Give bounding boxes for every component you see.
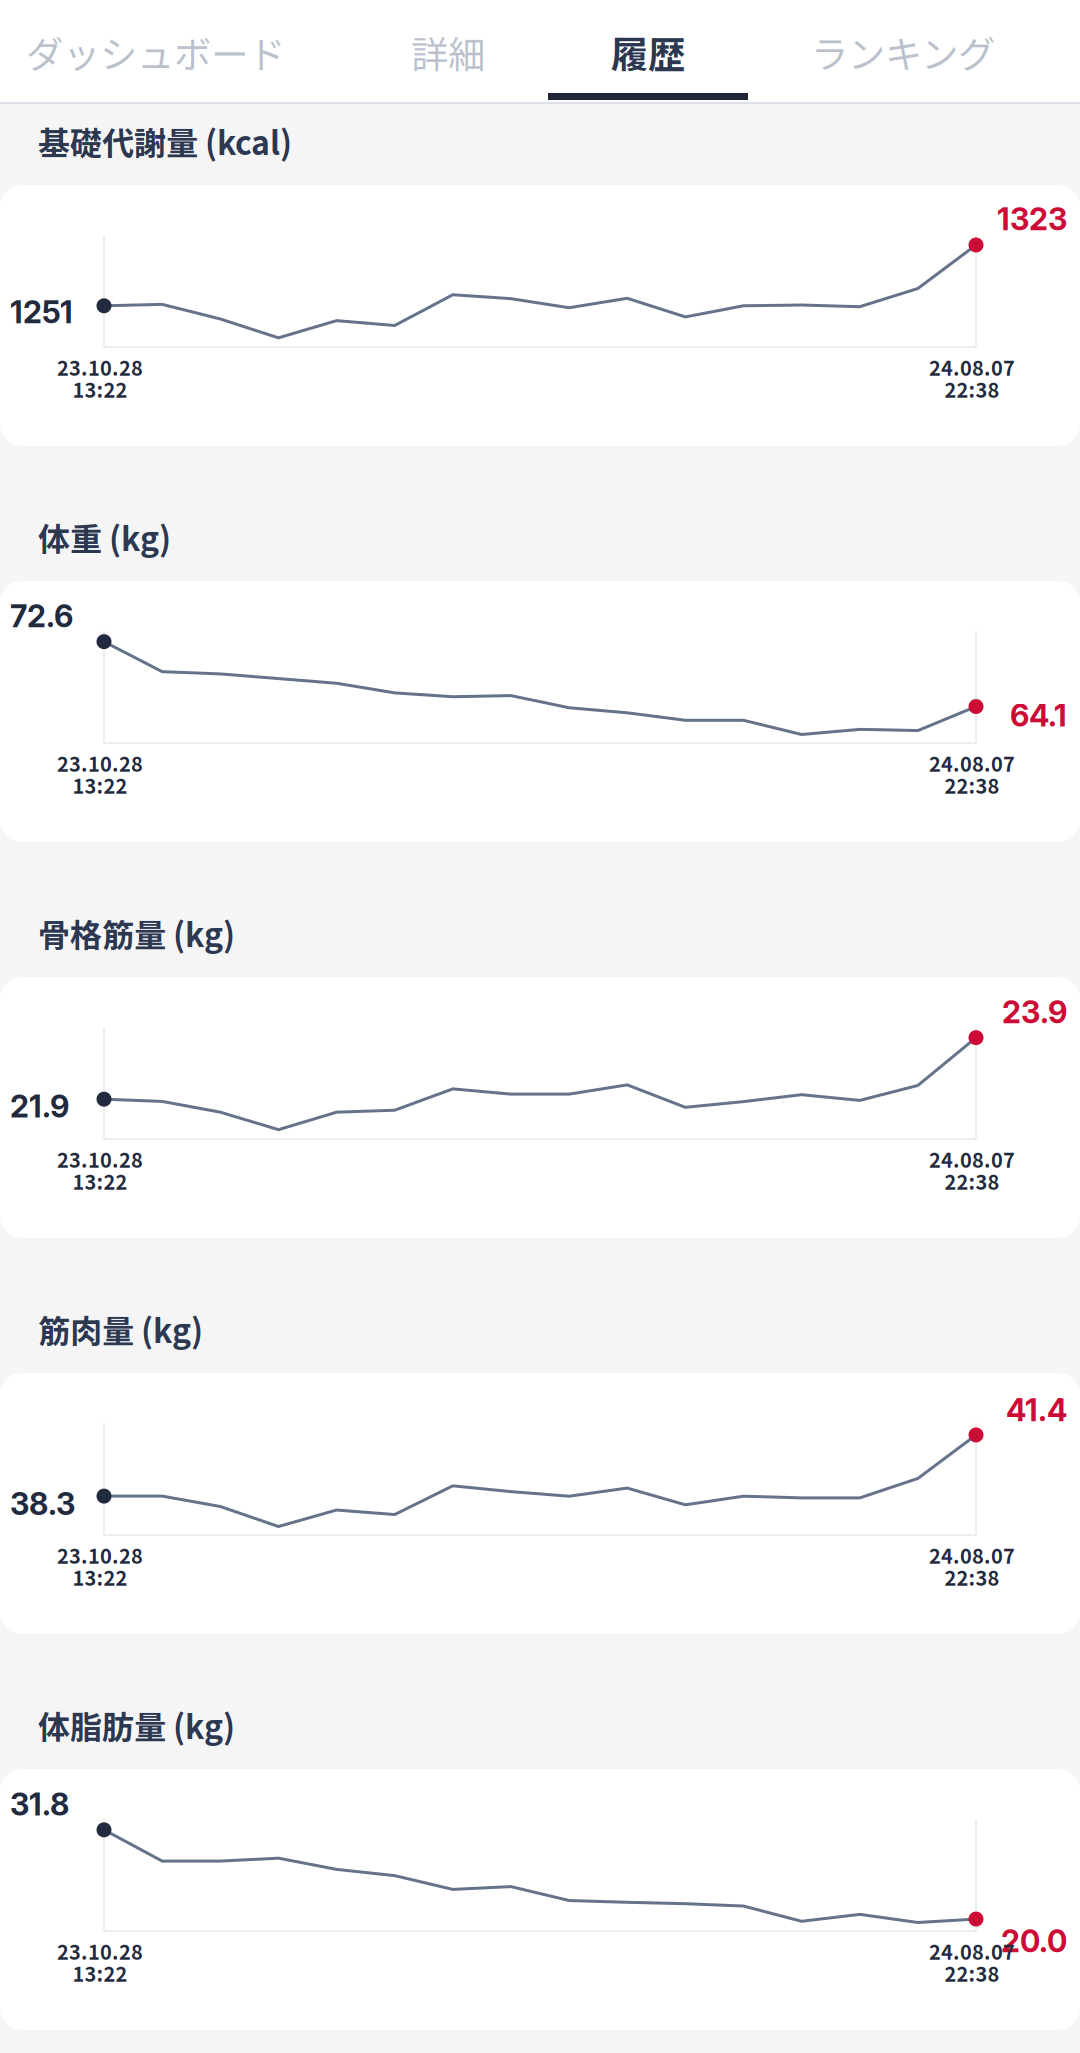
staticText: 1251 — [10, 294, 73, 331]
button[interactable]: 詳細 — [348, 0, 548, 104]
staticText: 31.8 — [10, 1786, 69, 1823]
staticText: 22:38 — [944, 1166, 999, 1195]
staticText: 13:22 — [72, 1166, 127, 1195]
staticText: 骨格筋量 (kg) — [38, 910, 235, 956]
staticText: 20.0 — [1001, 1922, 1067, 1959]
staticText: 体脂肪量 (kg) — [38, 1702, 235, 1748]
staticText: 13:22 — [72, 374, 127, 403]
staticText: 72.6 — [10, 597, 73, 634]
staticText: 22:38 — [944, 1958, 999, 1987]
staticText: 13:22 — [72, 1958, 127, 1987]
staticText: 22:38 — [944, 770, 999, 799]
staticText: 1323 — [997, 200, 1067, 237]
staticText: 履歴 — [611, 25, 685, 79]
staticText: 24.08.07 — [929, 1540, 1015, 1569]
staticText: 23.10.28 — [57, 352, 143, 381]
staticText: 23.10.28 — [57, 1936, 143, 1965]
staticText: 21.9 — [10, 1088, 69, 1125]
button[interactable]: ダッシュボード — [0, 0, 348, 104]
staticText: 23.9 — [1002, 993, 1067, 1030]
staticText: 22:38 — [944, 1562, 999, 1591]
staticText: 41.4 — [1006, 1391, 1067, 1429]
staticText: 64.1 — [1010, 697, 1067, 734]
staticText: 基礎代謝量 (kcal) — [38, 118, 292, 164]
staticText: 23.10.28 — [57, 1540, 143, 1569]
staticText: 筋肉量 (kg) — [38, 1306, 203, 1352]
staticText: 38.3 — [10, 1485, 75, 1522]
staticText: 13:22 — [72, 770, 127, 799]
button[interactable]: ランキング — [748, 0, 1058, 104]
staticText: 24.08.07 — [929, 1144, 1015, 1173]
button[interactable]: 履歴 — [548, 0, 748, 104]
staticText: 23.10.28 — [57, 1144, 143, 1173]
staticText: 24.08.07 — [929, 1936, 1015, 1965]
staticText: ランキング — [811, 25, 995, 79]
staticText: 13:22 — [72, 1562, 127, 1591]
staticText: 詳細 — [411, 25, 485, 79]
staticText: 23.10.28 — [57, 748, 143, 777]
staticText: ダッシュボード — [26, 25, 285, 79]
staticText: 体重 (kg) — [38, 514, 171, 560]
staticText: 22:38 — [944, 374, 999, 403]
staticText: 24.08.07 — [929, 352, 1015, 381]
staticText: 24.08.07 — [929, 748, 1015, 777]
